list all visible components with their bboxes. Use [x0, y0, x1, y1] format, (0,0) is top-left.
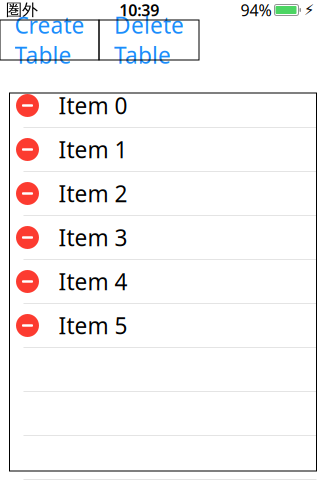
staticText: 10:39 [119, 0, 159, 21]
staticText: Item 5 [58, 310, 127, 340]
staticText: Item 2 [58, 178, 127, 208]
staticText: Item 0 [58, 90, 127, 120]
staticText: Item 3 [58, 222, 127, 252]
staticText: Item 4 [58, 266, 127, 296]
staticText: ⚡︎ [304, 2, 314, 18]
button[interactable]: Delete Item 0 [9, 84, 45, 127]
staticText: Delete Table [114, 10, 184, 70]
button[interactable]: Delete Item 5 [9, 304, 45, 347]
staticText: Item 1 [58, 134, 127, 164]
button[interactable]: Delete Item 3 [9, 216, 45, 259]
staticText: 94% [240, 0, 271, 21]
button[interactable]: Delete Item 4 [9, 260, 45, 303]
staticText: Create Table [14, 10, 84, 70]
button[interactable]: Delete Table [99, 20, 199, 60]
button[interactable]: Delete Item 1 [9, 128, 45, 171]
button[interactable]: Create Table [0, 20, 99, 60]
button[interactable]: Delete Item 2 [9, 172, 45, 215]
staticText: 圏外 [6, 0, 38, 20]
